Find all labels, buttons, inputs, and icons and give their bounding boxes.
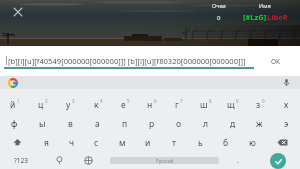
button[interactable]: с [84, 133, 109, 152]
button[interactable]: щ [219, 95, 246, 114]
staticText: щ [227, 99, 235, 111]
staticText: 5 [127, 98, 130, 104]
staticText: 2 [45, 98, 48, 104]
staticText: LibeR [267, 12, 288, 22]
staticText: 9 [236, 98, 239, 104]
button[interactable]: Voice input [282, 78, 291, 87]
staticText: б [223, 137, 229, 149]
staticText: э [284, 118, 289, 130]
button[interactable]: р [138, 114, 165, 133]
staticText: д [230, 118, 236, 130]
button[interactable]: ?123 [0, 152, 42, 169]
staticText: 0 [262, 98, 265, 104]
button[interactable]: Google [8, 78, 18, 88]
staticText: 3 [72, 98, 75, 104]
staticText: ш [200, 99, 208, 111]
button[interactable]: в [56, 114, 84, 133]
staticText: у [66, 99, 71, 111]
staticText: г [175, 99, 179, 111]
button[interactable]: Русский [110, 157, 219, 164]
staticText: 0 [217, 14, 221, 22]
button[interactable]: у [56, 95, 84, 114]
button[interactable]: Emoji [42, 152, 76, 169]
staticText: OK [271, 57, 281, 66]
button[interactable]: м [109, 133, 135, 152]
staticText: ч [69, 137, 75, 149]
staticText: ю [249, 137, 256, 149]
button[interactable]: о [165, 114, 192, 133]
staticText: Русский [156, 158, 174, 164]
staticText: ф [11, 118, 18, 130]
staticText: с [94, 137, 99, 149]
staticText: р [149, 118, 155, 130]
staticText: 1 [17, 98, 20, 104]
staticText: а [95, 118, 100, 130]
button[interactable]: л [192, 114, 219, 133]
button[interactable]: ш [192, 95, 219, 114]
staticText: 4 [100, 98, 103, 104]
staticText: ?123 [14, 156, 28, 165]
button[interactable]: ж [246, 114, 273, 133]
staticText: Очки [212, 2, 226, 9]
button[interactable]: х [273, 95, 300, 114]
button[interactable]: Change language [76, 152, 100, 169]
staticText: м [119, 137, 126, 149]
staticText: й [10, 99, 16, 111]
staticText: х [284, 99, 289, 111]
button[interactable]: д [219, 114, 246, 133]
staticText: 6 [154, 98, 157, 104]
button[interactable]: т [161, 133, 187, 152]
button[interactable]: з [246, 95, 273, 114]
button[interactable]: й [0, 95, 28, 114]
staticText: е [121, 99, 126, 111]
button[interactable]: Backspace [265, 133, 300, 152]
button[interactable]: е [111, 95, 138, 114]
button[interactable]: я [34, 133, 59, 152]
button[interactable]: ы [28, 114, 56, 133]
staticText: и [145, 137, 151, 149]
staticText: [#LzG] [243, 12, 267, 22]
button[interactable]: ц [28, 95, 56, 114]
staticText: в [68, 118, 73, 130]
staticText: к [94, 99, 99, 111]
button[interactable]: OK [271, 57, 281, 66]
button[interactable]: э [273, 114, 300, 133]
button[interactable]: Enter [256, 152, 300, 169]
staticText: ж [256, 118, 263, 130]
staticText: Имя [259, 2, 271, 9]
button[interactable]: и [135, 133, 161, 152]
staticText: 8 [209, 98, 212, 104]
button[interactable]: а [84, 114, 111, 133]
staticText: н [147, 99, 153, 111]
staticText: з [256, 99, 261, 111]
button[interactable]: ф [0, 114, 28, 133]
button[interactable]: г [165, 95, 192, 114]
staticText: . [237, 156, 239, 166]
button[interactable]: ч [59, 133, 84, 152]
button[interactable]: ю [239, 133, 265, 152]
button[interactable]: н [138, 95, 165, 114]
button[interactable]: ь [187, 133, 213, 152]
staticText: ь [198, 137, 203, 149]
staticText: л [203, 118, 208, 130]
staticText: т [172, 137, 176, 149]
staticText: [b][i][u][f40549[000000[000000]]] [b][i]… [8, 56, 246, 66]
button[interactable]: к [84, 95, 111, 114]
staticText: о [176, 118, 182, 130]
staticText: ц [38, 99, 44, 111]
staticText: я [44, 137, 49, 149]
button[interactable]: б [213, 133, 239, 152]
button[interactable]: Close [10, 4, 26, 20]
button[interactable]: п [111, 114, 138, 133]
staticText: 7 [180, 98, 183, 104]
button[interactable]: Shift [0, 133, 34, 152]
staticText: п [122, 118, 128, 130]
staticText: ы [39, 118, 46, 130]
